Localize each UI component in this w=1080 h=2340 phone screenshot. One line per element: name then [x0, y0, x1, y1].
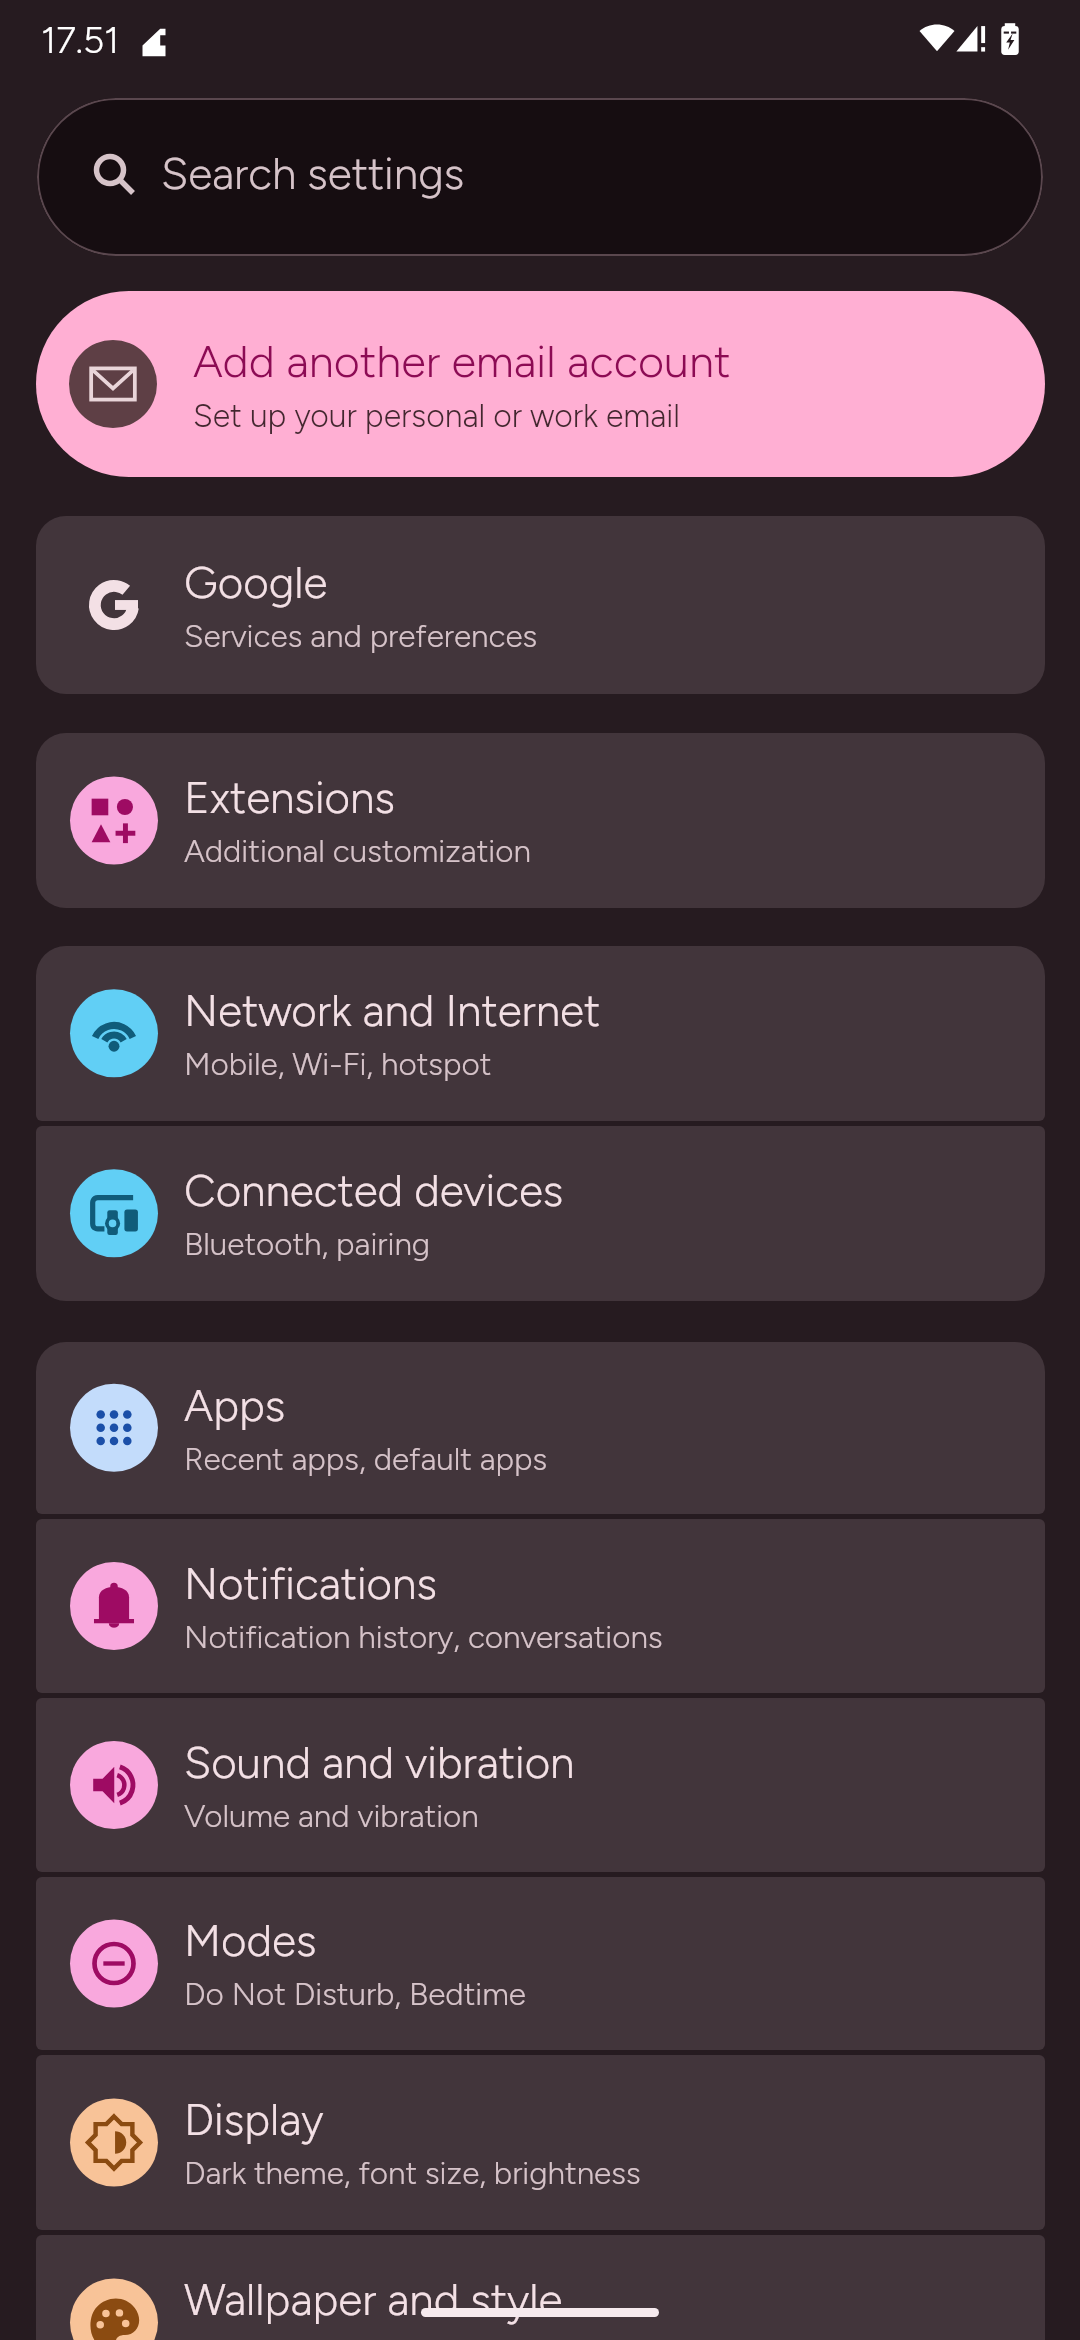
staticText: Add another email account — [193, 334, 731, 388]
staticText: Display — [184, 2093, 324, 2146]
button[interactable]: Google — [36, 516, 1045, 694]
staticText: Connected devices — [184, 1164, 564, 1217]
button[interactable]: Search settings — [37, 98, 1043, 256]
staticText: Volume and vibration — [184, 1797, 479, 1835]
staticText: 17.51 — [41, 18, 120, 62]
button[interactable]: Modes — [36, 1877, 1045, 2050]
button[interactable]: Add another email account — [36, 291, 1045, 477]
staticText: Modes — [184, 1914, 317, 1967]
button[interactable]: Sound and vibration — [36, 1698, 1045, 1872]
staticText: Sound and vibration — [184, 1736, 575, 1789]
staticText: Apps — [184, 1379, 286, 1432]
button[interactable]: Extensions — [36, 733, 1045, 908]
button[interactable]: Network and Internet — [36, 946, 1045, 1121]
staticText: Search settings — [161, 147, 465, 200]
staticText: Network and Internet — [184, 984, 601, 1037]
staticText: Do Not Disturb, Bedtime — [184, 1975, 526, 2013]
staticText: Dark theme, font size, brightness — [184, 2154, 641, 2192]
staticText: Notifications — [184, 1557, 437, 1610]
button[interactable]: Notifications — [36, 1519, 1045, 1693]
staticText: Extensions — [184, 771, 395, 824]
button[interactable]: Connected devices — [36, 1126, 1045, 1301]
staticText: Services and preferences — [184, 617, 538, 655]
staticText: Bluetooth, pairing — [184, 1225, 431, 1263]
staticText: Google — [184, 556, 328, 609]
button[interactable]: Wallpaper and style — [36, 2235, 1045, 2340]
staticText: Set up your personal or work email — [193, 397, 681, 435]
staticText: Additional customization — [184, 832, 531, 870]
staticText: Wallpaper and style — [184, 2273, 563, 2326]
button[interactable]: Display — [36, 2055, 1045, 2230]
staticText: Recent apps, default apps — [184, 1440, 548, 1478]
button[interactable]: Apps — [36, 1342, 1045, 1514]
staticText: Mobile, Wi-Fi, hotspot — [184, 1045, 492, 1083]
staticText: Notification history, conversations — [184, 1618, 663, 1656]
